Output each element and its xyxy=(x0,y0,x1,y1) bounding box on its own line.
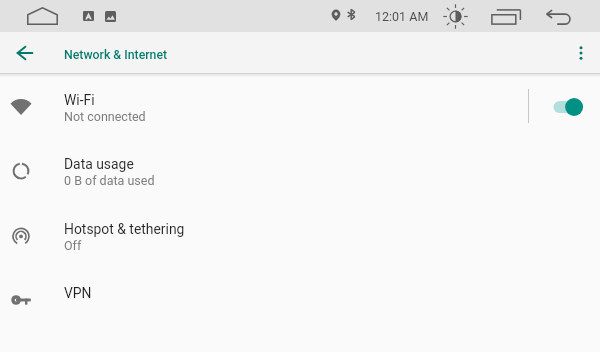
button[interactable]: Navigate up xyxy=(4,32,45,73)
staticText: 0 B of data used xyxy=(64,173,155,188)
staticText: Off xyxy=(64,238,82,253)
staticText: 12:01 AM xyxy=(375,9,429,24)
staticText: Wi-Fi xyxy=(64,92,95,108)
staticText: Data usage xyxy=(64,156,134,172)
button[interactable]: Wi-Fi xyxy=(0,75,600,139)
staticText: Network & Internet xyxy=(64,48,168,62)
button[interactable]: Recent apps xyxy=(490,8,522,26)
button[interactable]: Back xyxy=(546,9,572,25)
staticText: Not connected xyxy=(64,109,146,124)
button[interactable]: VPN xyxy=(0,268,600,332)
button[interactable]: Hotspot & tethering xyxy=(0,204,600,268)
button[interactable]: Wi-Fi on xyxy=(537,75,600,139)
button[interactable]: Home xyxy=(27,7,58,25)
button[interactable]: Data usage xyxy=(0,139,600,203)
button[interactable]: More options xyxy=(560,32,600,73)
staticText: Hotspot & tethering xyxy=(64,221,185,237)
staticText: VPN xyxy=(64,285,92,301)
